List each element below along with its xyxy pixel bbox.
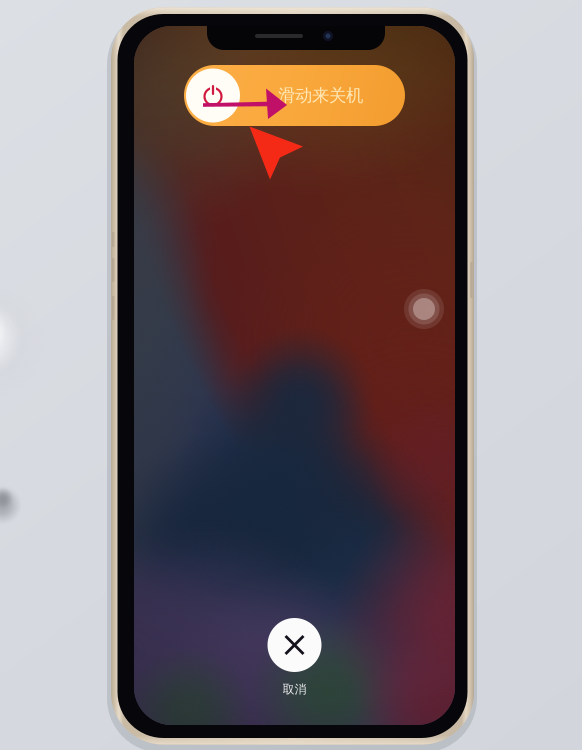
staticText: 滑动来关机 [278, 85, 363, 106]
button[interactable]: 滑动来关机 [184, 65, 405, 126]
button[interactable]: 取消 [134, 618, 455, 697]
button[interactable]: AssistiveTouch [403, 288, 445, 330]
staticText: 取消 [282, 682, 306, 697]
